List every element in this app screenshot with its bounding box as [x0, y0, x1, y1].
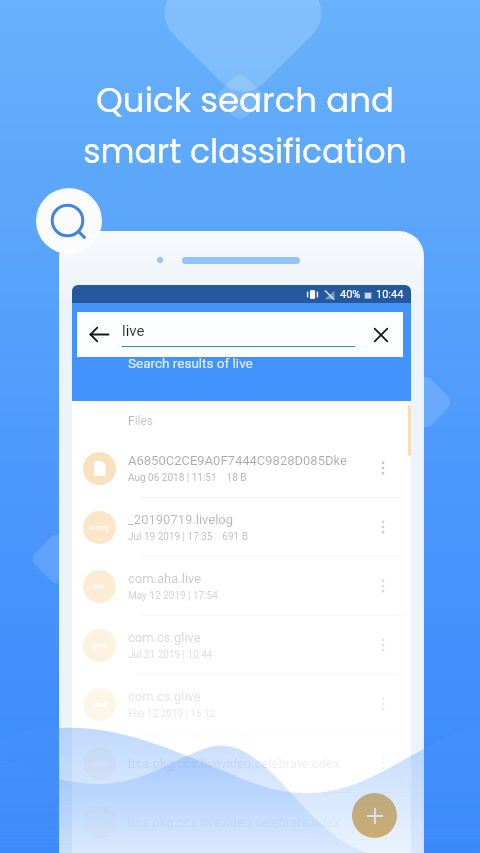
staticText: live — [122, 322, 145, 340]
button[interactable]: live — [72, 557, 411, 615]
staticText: 10:44 — [376, 288, 404, 301]
staticText: A6850C2CE9A0F7444C9828D085Dke — [128, 453, 347, 468]
staticText: Files — [128, 414, 154, 428]
staticText: com.aha.live — [128, 571, 202, 586]
staticText: Aug 06 2018 | 11:51 18 B — [128, 472, 247, 484]
button[interactable]: livelog — [72, 498, 411, 556]
staticText: Search results of live — [128, 355, 253, 371]
staticText: com.cs.glive — [128, 630, 201, 645]
staticText: livelog — [89, 524, 110, 532]
button[interactable]: More options — [366, 510, 400, 544]
staticText: Jul 21 2019 | 10:44 — [128, 649, 213, 661]
staticText: 40% — [340, 288, 361, 301]
button[interactable]: Search — [36, 188, 102, 254]
staticText: Jul 19 2019 | 17:35 691 B — [128, 531, 248, 543]
button[interactable]: glive — [72, 675, 411, 733]
button[interactable]: Back — [77, 312, 403, 357]
staticText: com.cs.glive — [128, 689, 201, 704]
staticText: ltsa.pkg.ccs.livevideo.celebrate.odex — [128, 815, 340, 830]
button[interactable]: Add — [352, 793, 397, 838]
staticText: Quick search and — [96, 76, 394, 124]
staticText: ltsa.pkg.ccs.livevideo.celebrate.odex — [128, 756, 340, 771]
button[interactable]: odex — [72, 734, 411, 792]
button[interactable]: Clear — [358, 312, 403, 357]
staticText: smart classification — [83, 128, 407, 174]
staticText: Feb 12 2019 | 15:12 — [128, 708, 216, 720]
button[interactable]: A6850C2CE9A0F7444C9828D085Dke — [72, 439, 411, 497]
staticText: glive — [92, 642, 107, 650]
button[interactable]: Back — [77, 312, 122, 357]
staticText: live — [94, 583, 105, 591]
button[interactable]: More options — [366, 569, 400, 603]
staticText: _20190719.livelog — [128, 512, 234, 527]
button[interactable]: More options — [366, 451, 400, 485]
staticText: May 12 2019 | 17:54 — [128, 590, 218, 602]
staticText: glive — [92, 701, 107, 709]
button[interactable]: odex — [72, 793, 411, 851]
button[interactable]: More options — [366, 746, 400, 780]
button[interactable]: More options — [366, 805, 400, 839]
button[interactable]: More options — [366, 628, 400, 662]
button[interactable]: glive — [72, 616, 411, 674]
staticText: odex — [92, 760, 108, 768]
